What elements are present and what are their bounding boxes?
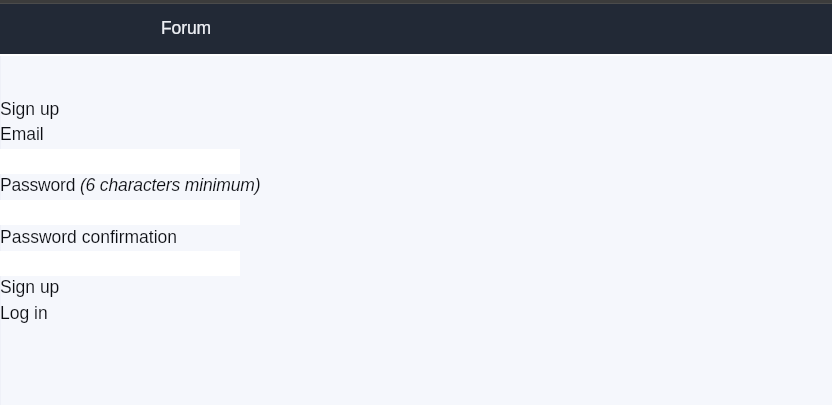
staticText: Sign up <box>0 99 60 119</box>
staticText: Password confirmation <box>0 227 178 247</box>
staticText: Forum <box>161 18 212 38</box>
button[interactable]: Sign up <box>0 277 60 297</box>
button[interactable]: Forum home <box>0 4 832 54</box>
button[interactable]: Log in <box>0 303 48 323</box>
staticText: Password (6 characters minimum) <box>0 175 261 195</box>
staticText: Email <box>0 124 44 144</box>
